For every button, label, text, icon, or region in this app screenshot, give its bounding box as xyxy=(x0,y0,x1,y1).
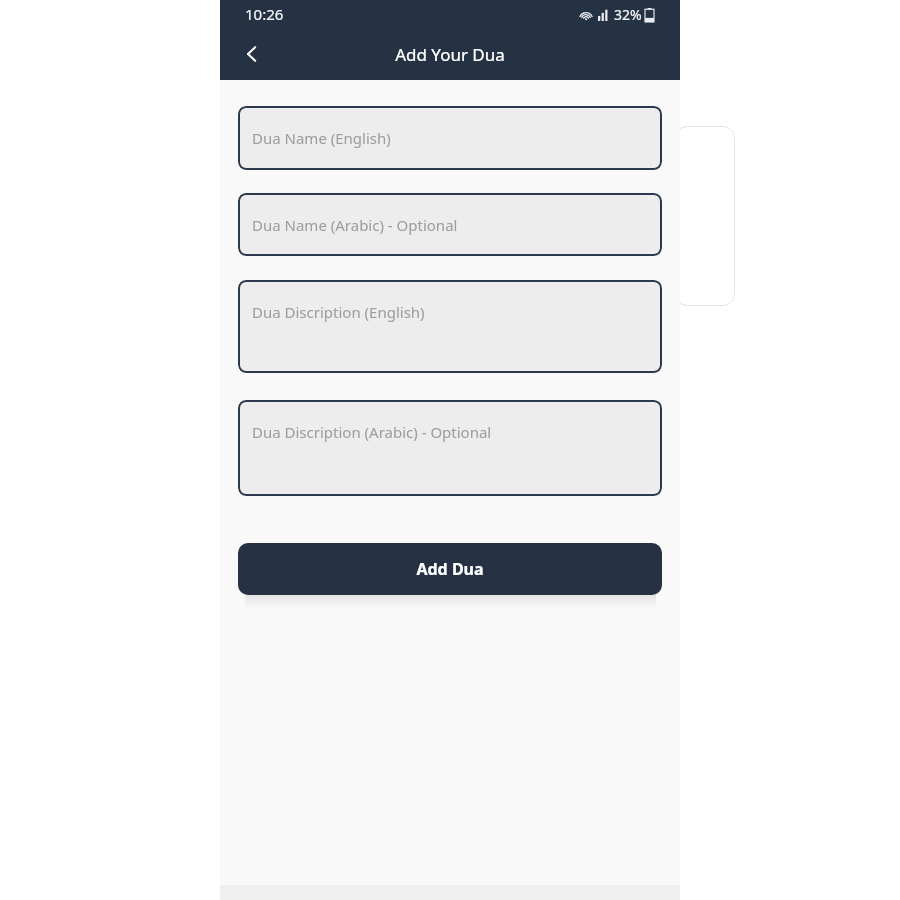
button[interactable]: Dua Discription (English) xyxy=(238,280,662,373)
staticText: Add Your Dua xyxy=(395,43,505,66)
staticText: Add Dua xyxy=(416,558,484,580)
staticText: Dua Name (English) xyxy=(252,128,391,148)
staticText: 10:26 xyxy=(245,4,284,24)
button[interactable]: Add Dua xyxy=(238,543,662,595)
staticText: Dua Name (Arabic) - Optional xyxy=(252,215,458,235)
button[interactable]: Back xyxy=(230,32,274,76)
button[interactable]: Dua Name (English) xyxy=(238,106,662,170)
staticText: Dua Discription (English) xyxy=(252,302,425,322)
button[interactable]: Dua Name (Arabic) - Optional xyxy=(238,193,662,256)
staticText: 32% xyxy=(614,5,642,24)
staticText: Dua Discription (Arabic) - Optional xyxy=(252,422,492,442)
button[interactable]: Dua Discription (Arabic) - Optional xyxy=(238,400,662,496)
